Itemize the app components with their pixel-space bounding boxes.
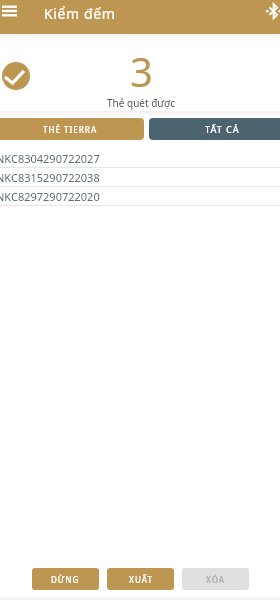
button[interactable]: NKC8297290722020 — [0, 187, 280, 206]
staticText: XUẤT — [129, 574, 153, 585]
staticText: XÓA — [206, 574, 226, 585]
button[interactable]: XUẤT — [107, 568, 174, 590]
button[interactable]: XÓA — [182, 568, 249, 590]
staticText: NKC8315290722038 — [0, 170, 100, 185]
staticText: Kiểm đếm — [44, 4, 116, 23]
button[interactable]: Menu — [2, 1, 17, 21]
button[interactable]: NKC8304290722027 — [0, 149, 280, 168]
staticText: THẺ TIERRA — [43, 124, 98, 135]
button[interactable]: TẤT CẢ — [149, 118, 280, 140]
staticText: NKC8297290722020 — [0, 189, 100, 204]
button[interactable]: THẺ TIERRA — [0, 118, 144, 140]
staticText: TẤT CẢ — [205, 123, 240, 135]
button[interactable]: DỪNG — [32, 568, 99, 590]
button[interactable]: NKC8315290722038 — [0, 168, 280, 187]
staticText: 3 — [130, 44, 153, 98]
staticText: DỪNG — [51, 574, 80, 585]
staticText: Thẻ quét được — [107, 96, 176, 110]
button[interactable]: Bluetooth — [262, 0, 280, 22]
staticText: NKC8304290722027 — [0, 151, 100, 166]
